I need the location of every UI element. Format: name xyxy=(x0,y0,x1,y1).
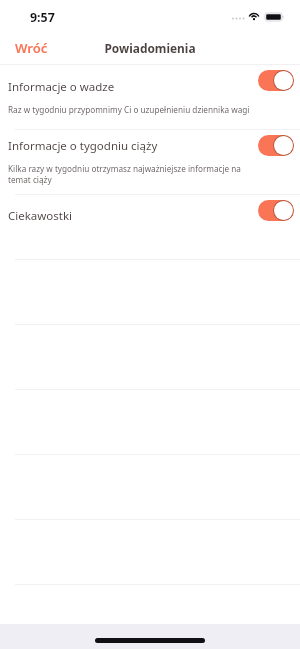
staticText: Ciekawostki xyxy=(8,208,73,224)
button[interactable]: Toggle notification xyxy=(258,135,294,156)
staticText: Informacje o wadze xyxy=(8,79,115,95)
staticText: temat ciąży xyxy=(8,174,52,185)
button[interactable]: Informacje o wadze xyxy=(0,64,300,129)
button[interactable]: Informacje o tygodniu ciąży xyxy=(0,129,300,194)
staticText: Informacje o tygodniu ciąży xyxy=(8,138,158,154)
staticText: 9:57 xyxy=(30,9,55,26)
staticText: Powiadomienia xyxy=(104,40,196,56)
staticText: Wróć xyxy=(15,39,48,57)
button[interactable]: Toggle notification xyxy=(258,70,294,91)
staticText: Kilka razy w tygodniu otrzymasz najważni… xyxy=(8,163,241,174)
button[interactable]: Toggle notification xyxy=(258,200,294,221)
button[interactable]: Wróć xyxy=(15,39,48,57)
button[interactable]: List item 9 xyxy=(0,584,300,649)
button[interactable]: Ciekawostki xyxy=(0,194,300,259)
staticText: Raz w tygodniu przypomnimy Ci o uzupełni… xyxy=(8,104,250,115)
